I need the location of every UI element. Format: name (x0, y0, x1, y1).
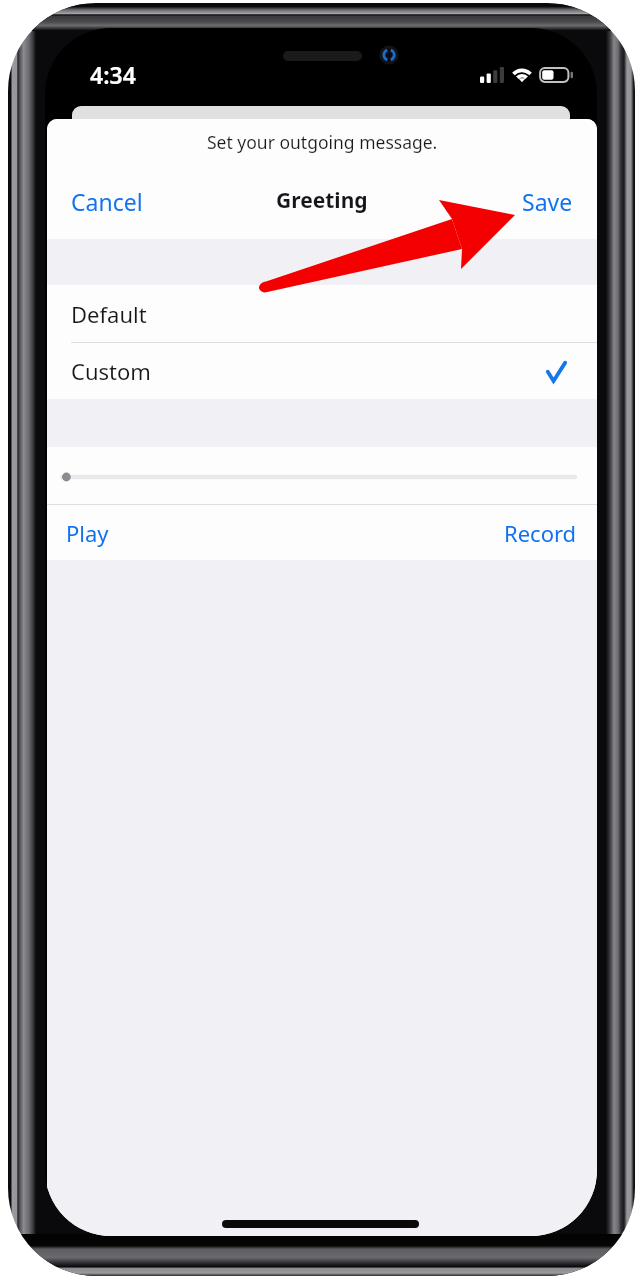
staticText: Set your outgoing message. (207, 130, 438, 154)
staticText: Save (522, 186, 573, 217)
staticText: Record (504, 518, 577, 548)
staticText: Greeting (276, 186, 368, 215)
staticText: Default (71, 299, 147, 329)
button[interactable]: Default (47, 285, 597, 342)
button[interactable]: Play (47, 508, 123, 558)
staticText: 4:34 (90, 59, 136, 90)
button[interactable]: Custom (47, 343, 597, 399)
staticText: Custom (71, 356, 151, 386)
staticText: Cancel (71, 186, 143, 217)
button[interactable]: Save (508, 176, 597, 227)
staticText: Play (66, 518, 109, 548)
button[interactable]: Cancel (47, 176, 157, 227)
button[interactable]: Record (490, 508, 597, 558)
